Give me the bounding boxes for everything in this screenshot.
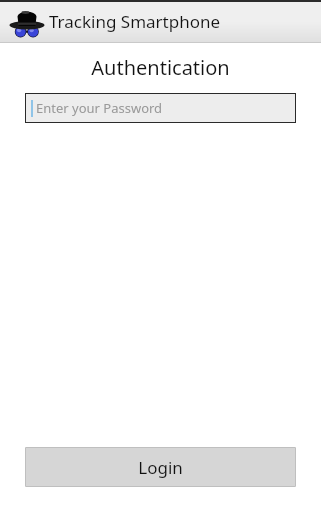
button[interactable]: Login xyxy=(25,447,296,487)
staticText: Tracking Smartphone xyxy=(49,10,221,33)
staticText: Login xyxy=(138,456,183,479)
button[interactable]: Enter your Password xyxy=(25,93,296,123)
staticText: Authentication xyxy=(91,54,230,81)
staticText: Enter your Password xyxy=(36,99,163,117)
